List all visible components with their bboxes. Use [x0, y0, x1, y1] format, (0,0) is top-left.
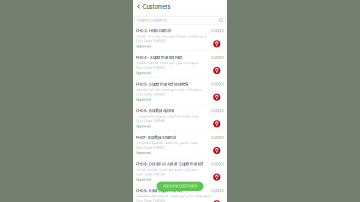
staticText: فندق فاطمين للاقامة والسياحة والخدمات ال…: [136, 34, 207, 38]
button[interactable]: ADD NEW CUSTOMER: [156, 182, 203, 191]
staticText: 0.000Dr: [211, 162, 224, 166]
staticText: 0.000Dr: [211, 108, 224, 113]
staticText: 0.000Dr: [211, 82, 224, 87]
staticText: 0.000Dr: [211, 135, 224, 140]
button[interactable]: FH09- Kadi Supermarket: [133, 184, 227, 202]
staticText: Approved: [136, 151, 151, 155]
button[interactable]: FH03- Hotel Fatmin: [133, 24, 227, 51]
staticText: بوفية شمسي للمأكولات الشعبية والحلويات: [136, 141, 198, 145]
staticText: Cust Code FH4508: [136, 172, 165, 176]
staticText: FH08- Durain Al Abrar Supermarket: [136, 162, 203, 166]
staticText: FH09- Kadi Supermarket: [136, 188, 182, 193]
staticText: سوبرماركت فاني لبيع المواد الغذائية بالت…: [136, 61, 199, 65]
staticText: ADD NEW CUSTOMER: [163, 184, 197, 188]
staticText: 0.000Dr: [211, 55, 224, 60]
staticText: Approved: [136, 97, 151, 102]
staticText: Cust Code FH4504: [136, 66, 165, 70]
staticText: FH04- Supermarket Fani: [136, 55, 182, 60]
staticText: Customers: [142, 3, 170, 10]
staticText: Cust Code FH4507: [136, 146, 165, 150]
staticText: Cust Code FH4503: [136, 39, 165, 43]
button[interactable]: FH06- Boofiya Ayisha: [133, 104, 227, 131]
button[interactable]: FH07- Boofiya Shamsi: [133, 131, 227, 157]
button[interactable]: FH08- Durain Al Abrar Supermarket: [133, 158, 227, 184]
staticText: Approved: [136, 124, 151, 128]
staticText: سوبرماركت كادي لبيع المواد الغذائية والا…: [136, 194, 211, 198]
staticText: سوبرماركت منرفة لبيع المواد الغذائية وال…: [136, 87, 202, 91]
staticText: FH07- Boofiya Shamsi: [136, 135, 176, 140]
staticText: Approved: [136, 44, 151, 48]
staticText: Cust Code FH4505: [136, 92, 165, 96]
staticText: Approved: [136, 177, 151, 182]
button[interactable]: Search Customer: [133, 13, 227, 24]
button[interactable]: FH04- Supermarket Fani: [133, 51, 227, 77]
staticText: Cust Code FH4509: [136, 199, 165, 202]
staticText: FH05- Supermarket Munrefa: [136, 82, 188, 87]
staticText: بوفية عائشة للمأكولات السريعة والمشروبات: [136, 114, 199, 118]
button[interactable]: Customers: [133, 1, 174, 12]
staticText: 0.000Dr: [211, 188, 224, 193]
button[interactable]: FH05- Supermarket Munrefa: [133, 78, 227, 104]
staticText: Approved: [136, 71, 151, 75]
staticText: Search Customer: [137, 18, 168, 23]
staticText: FH03- Hotel Fatmin: [136, 28, 171, 33]
staticText: Cust Code FH4506: [136, 119, 165, 123]
staticText: FH06- Boofiya Ayisha: [136, 108, 174, 113]
staticText: سوبرماركت الابرار لبيع المواد الغذائية ا…: [136, 167, 199, 171]
staticText: 0.000Dr: [211, 29, 224, 33]
